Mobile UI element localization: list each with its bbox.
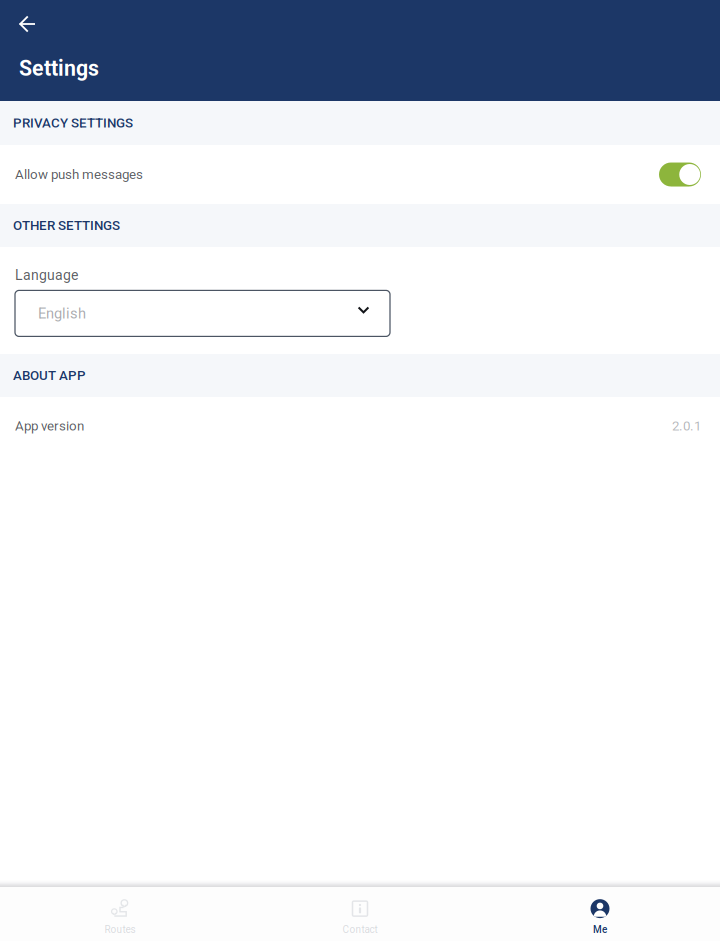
staticText: Routes — [104, 924, 135, 935]
button[interactable]: Routes — [0, 886, 240, 941]
staticText: 2.0.1 — [672, 418, 701, 434]
button[interactable]: Contact — [240, 886, 480, 941]
staticText: App version — [15, 418, 84, 434]
staticText: PRIVACY SETTINGS — [13, 115, 133, 131]
staticText: ABOUT APP — [13, 368, 86, 383]
staticText: OTHER SETTINGS — [13, 218, 120, 233]
button[interactable]: Allow push messages — [0, 145, 720, 204]
staticText: Allow push messages — [15, 167, 143, 182]
staticText: Language — [15, 267, 78, 283]
staticText: Me — [593, 924, 607, 935]
staticText: Contact — [342, 924, 377, 935]
button[interactable]: Back — [0, 0, 49, 40]
staticText: Settings — [19, 56, 99, 81]
staticText: English — [38, 305, 86, 322]
button[interactable]: Me — [480, 886, 720, 941]
button[interactable]: English — [15, 290, 390, 336]
